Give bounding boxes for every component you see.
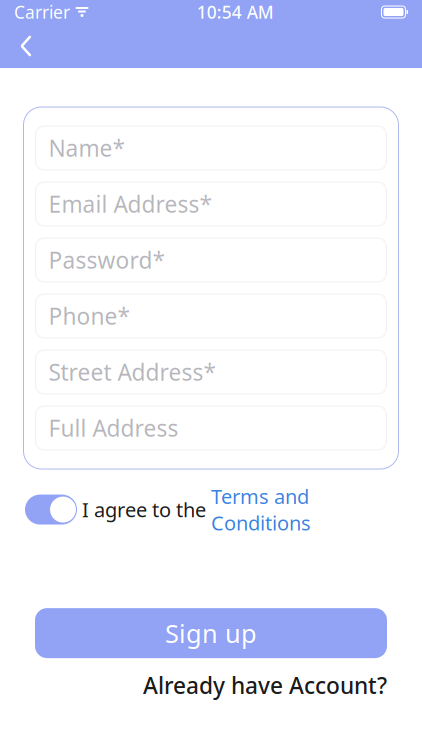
staticText: Terms and Conditions bbox=[211, 483, 311, 536]
staticText: Sign up bbox=[165, 616, 257, 650]
button[interactable]: Name* bbox=[35, 126, 386, 170]
button[interactable]: Phone* bbox=[35, 294, 386, 338]
staticText: Full Address bbox=[48, 413, 178, 443]
staticText: Name* bbox=[48, 133, 124, 163]
button[interactable]: Email Address* bbox=[35, 182, 386, 226]
button[interactable]: Agree to Terms and Conditions bbox=[24, 495, 78, 525]
button[interactable]: Street Address* bbox=[35, 350, 386, 394]
staticText: Street Address* bbox=[48, 357, 215, 387]
staticText: Carrier bbox=[14, 0, 70, 23]
button[interactable]: Back bbox=[4, 24, 48, 68]
staticText: 10:54 AM bbox=[197, 0, 274, 23]
button[interactable]: Password* bbox=[35, 238, 386, 282]
staticText: Password* bbox=[48, 245, 164, 275]
staticText: Email Address* bbox=[48, 189, 211, 219]
staticText: Phone* bbox=[48, 301, 129, 331]
staticText: I agree to the bbox=[82, 496, 211, 523]
button[interactable]: Full Address bbox=[35, 406, 386, 450]
button[interactable]: Terms and Conditions bbox=[211, 483, 311, 536]
button[interactable]: Sign up bbox=[35, 608, 387, 658]
staticText: Already have Account? bbox=[143, 670, 387, 700]
button[interactable]: Already have Account? bbox=[143, 670, 387, 700]
